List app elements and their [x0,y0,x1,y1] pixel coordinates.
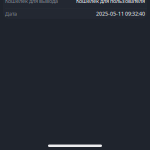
staticText: Кошелек для вывода [5,0,58,4]
button[interactable]: Кошелек для вывода [3,0,147,8]
button[interactable]: Дата [3,8,147,19]
staticText: Кошелек для пользователя [76,0,145,4]
staticText: 2025-05-11 09:32:40 [96,10,145,17]
staticText: Дата [5,10,17,17]
